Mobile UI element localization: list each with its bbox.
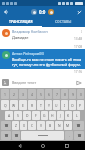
staticText: H: [51, 113, 54, 118]
staticText: M: [66, 123, 70, 128]
button[interactable]: D: [23, 111, 31, 120]
staticText: F: [35, 113, 37, 118]
staticText: 8: [64, 92, 66, 97]
button[interactable]: Y: [45, 100, 52, 110]
button[interactable]: Enter: [74, 131, 84, 140]
button[interactable]: СОСТАВЫ: [42, 18, 85, 27]
staticText: E: [22, 103, 24, 108]
staticText: V: [40, 123, 43, 128]
staticText: K: [67, 113, 70, 118]
button[interactable]: U: [53, 100, 60, 110]
staticText: J: [60, 113, 61, 118]
button[interactable]: 5: [37, 89, 44, 99]
staticText: P: [79, 103, 82, 108]
staticText: Q: [4, 103, 7, 108]
staticText: 0:0: [39, 9, 46, 15]
button[interactable]: Recent apps: [62, 141, 71, 150]
button[interactable]: 9: [69, 89, 76, 99]
staticText: 5: [40, 92, 42, 97]
button[interactable]: 4: [28, 89, 36, 99]
staticText: N: [58, 123, 61, 128]
staticText: Введите текст: [12, 80, 37, 85]
button[interactable]: H: [49, 111, 56, 120]
button[interactable]: Symbols: [1, 131, 11, 140]
button[interactable]: Введите текст: [12, 80, 75, 85]
staticText: A: [8, 113, 11, 118]
button[interactable]: S: [14, 111, 22, 120]
button[interactable]: Team: [48, 9, 54, 15]
button[interactable]: G: [41, 111, 48, 120]
button[interactable]: L: [73, 111, 80, 120]
button[interactable]: K: [65, 111, 72, 120]
staticText: R: [31, 103, 34, 108]
button[interactable]: J: [57, 111, 64, 120]
staticText: G: [43, 113, 46, 118]
button[interactable]: Send: [75, 79, 83, 87]
staticText: C: [31, 123, 34, 128]
staticText: 1: [4, 92, 6, 97]
button[interactable]: Антал Рейтаров93: [0, 49, 85, 69]
button[interactable]: 2: [10, 89, 18, 99]
staticText: 2: [13, 92, 15, 97]
button[interactable]: 7: [53, 89, 60, 99]
staticText: 6: [48, 92, 50, 97]
button[interactable]: A: [5, 111, 13, 120]
staticText: T: [40, 103, 42, 108]
button[interactable]: Back: [15, 141, 24, 150]
staticText: W: [12, 103, 16, 108]
button[interactable]: Home: [38, 141, 47, 150]
button[interactable]: Shift: [1, 121, 11, 130]
button[interactable]: Q: [1, 100, 9, 110]
button[interactable]: Notifications: [73, 6, 85, 18]
staticText: D: [26, 113, 29, 118]
button[interactable]: I: [61, 100, 68, 110]
staticText: X: [23, 123, 25, 128]
staticText: 17:16: [74, 70, 83, 74]
button[interactable]: More options: [79, 29, 83, 33]
staticText: Вообще-то вам не стоит писать об этом ту…: [12, 57, 83, 67]
button[interactable]: Attach image: [2, 79, 9, 86]
staticText: ТРАНСЛЯЦИЯ: [9, 19, 33, 24]
button[interactable]: T: [37, 100, 44, 110]
staticText: Владимир Колбасин: [12, 29, 48, 34]
button[interactable]: V: [37, 121, 45, 130]
button[interactable]: Team: [31, 9, 37, 15]
button[interactable]: P: [77, 100, 84, 110]
button[interactable]: Settings: [12, 131, 20, 140]
button[interactable]: X: [20, 121, 27, 130]
button[interactable]: O: [69, 100, 76, 110]
button[interactable]: R: [28, 100, 36, 110]
button[interactable]: E: [19, 100, 27, 110]
button[interactable]: 6: [45, 89, 52, 99]
button[interactable]: Backspace: [73, 121, 84, 130]
button[interactable]: 3: [19, 89, 27, 99]
button[interactable]: ТРАНСЛЯЦИЯ: [0, 18, 42, 27]
button[interactable]: B: [46, 121, 54, 130]
staticText: Y: [48, 103, 50, 108]
button[interactable]: N: [55, 121, 63, 130]
button[interactable]: M: [64, 121, 72, 130]
staticText: Давидзе: [12, 35, 29, 40]
button[interactable]: 1: [1, 89, 9, 99]
staticText: 17:08: [74, 45, 83, 49]
staticText: 7: [56, 92, 58, 97]
button[interactable]: 0: [77, 89, 84, 99]
button[interactable]: Back: [0, 6, 12, 18]
button[interactable]: Z: [12, 121, 19, 130]
button[interactable]: W: [10, 100, 18, 110]
staticText: S: [17, 113, 19, 118]
button[interactable]: C: [28, 121, 36, 130]
button[interactable]: Space: [21, 131, 64, 140]
button[interactable]: F: [32, 111, 40, 120]
button[interactable]: Владимир Колбасин: [0, 27, 85, 43]
staticText: 0: [80, 92, 82, 97]
staticText: 13:48: [74, 37, 83, 41]
staticText: Z: [15, 123, 17, 128]
staticText: 3: [22, 92, 24, 97]
staticText: I: [64, 103, 66, 108]
staticText: 4: [31, 92, 33, 97]
staticText: L: [76, 113, 78, 118]
button[interactable]: 8: [61, 89, 68, 99]
staticText: СОСТАВЫ: [55, 19, 72, 24]
